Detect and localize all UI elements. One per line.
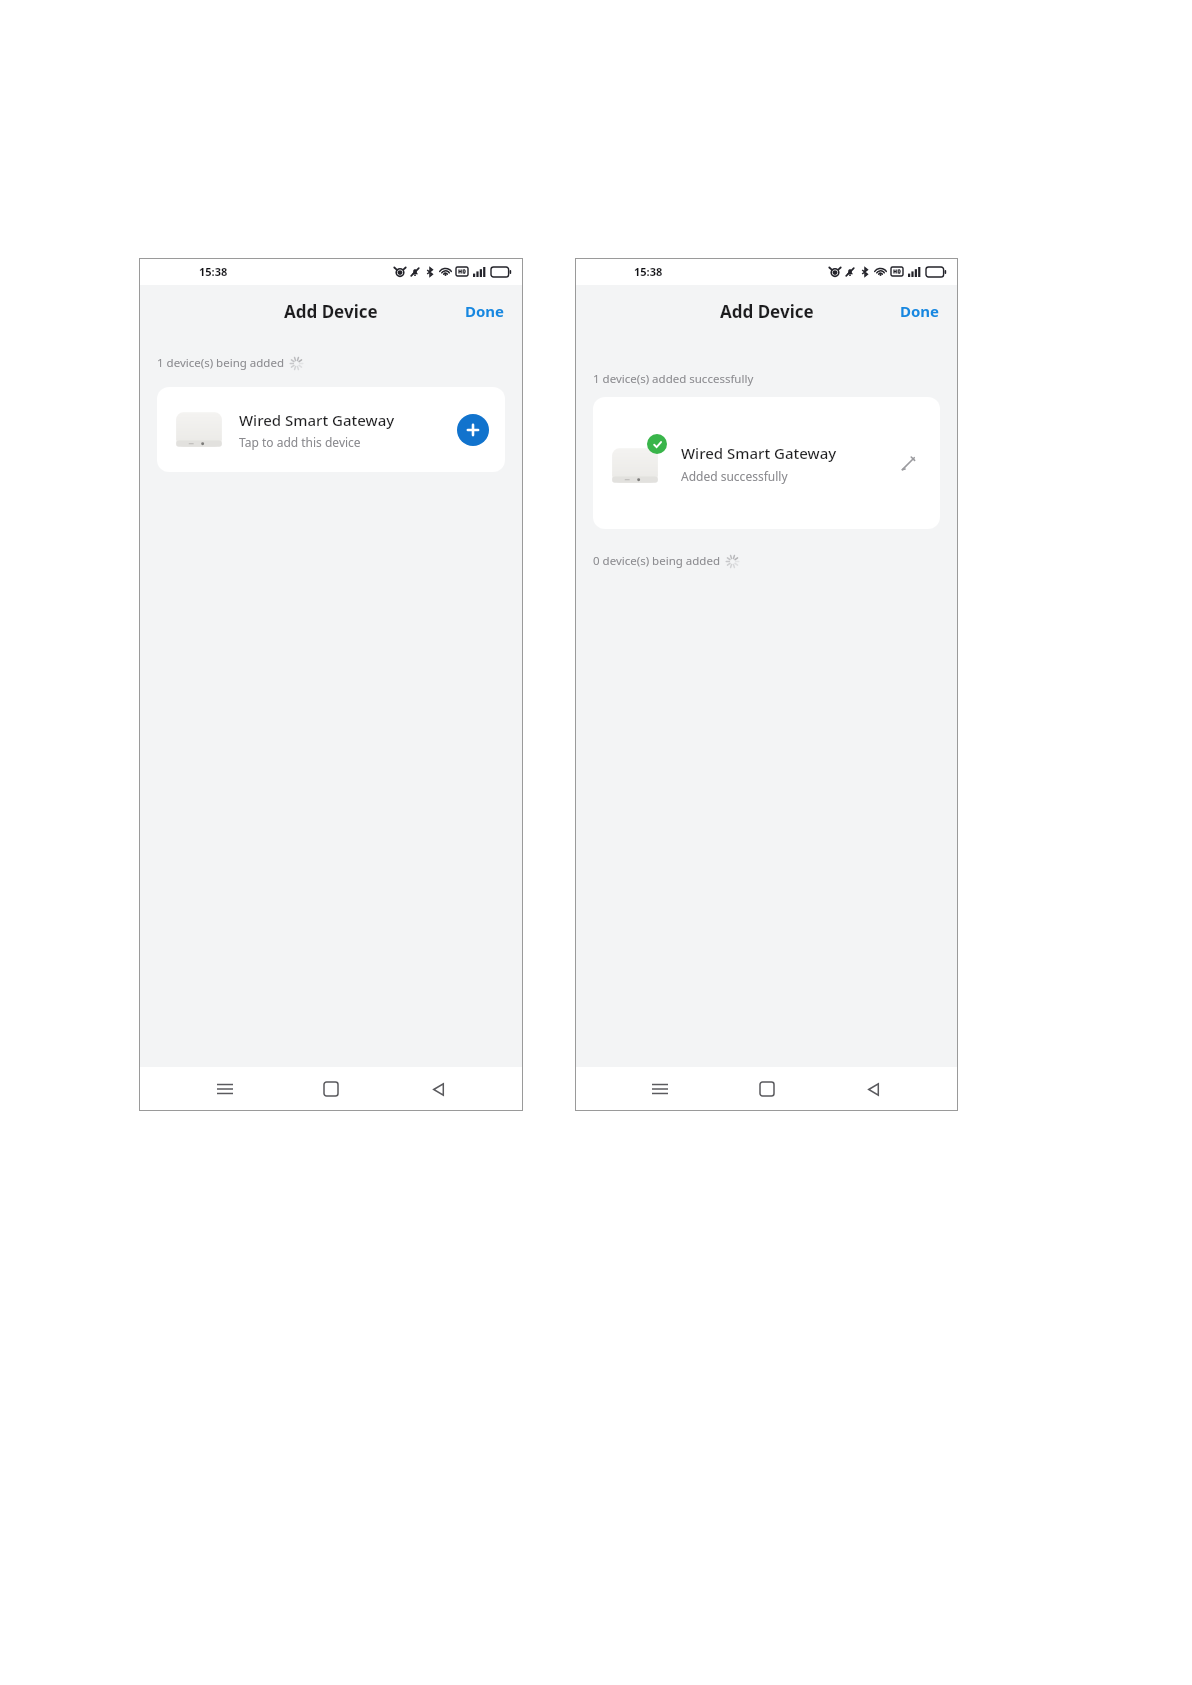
- staticText: Done: [900, 301, 940, 321]
- button[interactable]: Wired Smart Gateway: [157, 387, 505, 472]
- staticText: Added successfully: [681, 468, 788, 484]
- staticText: 1 device(s) being added: [157, 355, 284, 371]
- button[interactable]: Done: [447, 291, 523, 331]
- button[interactable]: Rename device: [892, 447, 924, 479]
- staticText: Wired Smart Gateway: [681, 443, 837, 463]
- button[interactable]: Done: [882, 291, 958, 331]
- button[interactable]: Wired Smart Gateway: [593, 397, 940, 529]
- button[interactable]: Home: [746, 1068, 788, 1110]
- staticText: Wired Smart Gateway: [239, 410, 395, 430]
- staticText: Tap to add this device: [239, 434, 361, 450]
- staticText: 0 device(s) being added: [593, 553, 720, 569]
- staticText: Add Device: [284, 300, 378, 323]
- button[interactable]: Back: [852, 1068, 894, 1110]
- button[interactable]: Back: [417, 1068, 459, 1110]
- button[interactable]: Add device: [457, 414, 489, 446]
- button[interactable]: Recent apps: [639, 1068, 681, 1110]
- staticText: Done: [465, 301, 505, 321]
- button[interactable]: Home: [310, 1068, 352, 1110]
- button[interactable]: Recent apps: [204, 1068, 246, 1110]
- staticText: 15:38: [199, 264, 228, 279]
- staticText: 1 device(s) added successfully: [593, 371, 754, 387]
- staticText: Add Device: [720, 300, 814, 323]
- staticText: 15:38: [634, 264, 663, 279]
